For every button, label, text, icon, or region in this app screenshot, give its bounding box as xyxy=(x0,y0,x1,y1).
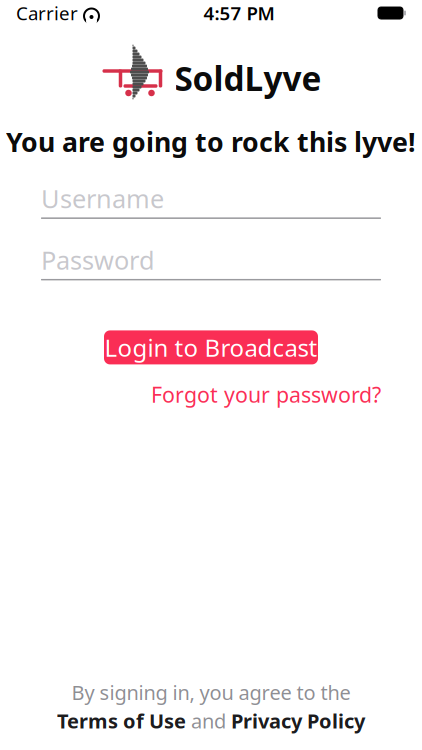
button[interactable]: Login to Broadcast xyxy=(104,330,318,364)
staticText: You are going to rock this lyve! xyxy=(6,124,416,159)
staticText: 4:57 PM xyxy=(203,1,274,25)
staticText: Forgot your password? xyxy=(151,380,381,409)
button[interactable]: Privacy Policy xyxy=(231,707,365,734)
staticText: Privacy Policy xyxy=(231,707,365,734)
staticText: Terms of Use xyxy=(57,707,186,734)
staticText: Login to Broadcast xyxy=(104,331,317,363)
staticText: and xyxy=(191,707,226,734)
button[interactable]: Forgot your password? xyxy=(151,380,381,409)
staticText: Password xyxy=(41,243,155,277)
staticText: By signing in, you agree to the xyxy=(71,679,350,705)
staticText: Carrier xyxy=(16,1,78,25)
button[interactable]: Terms of Use xyxy=(57,707,186,734)
staticText: Username xyxy=(41,182,164,215)
staticText: SoldLyve xyxy=(174,56,321,100)
